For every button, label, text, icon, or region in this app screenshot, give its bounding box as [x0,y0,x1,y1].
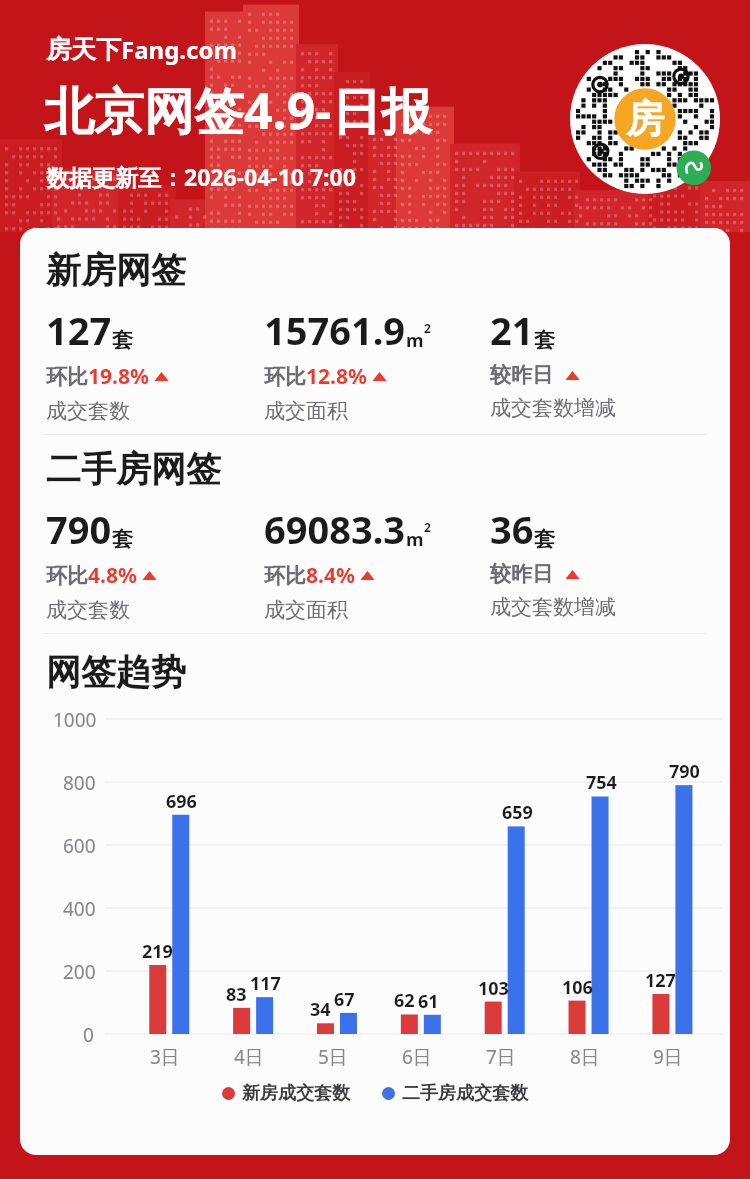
staticText: 9日 [653,1044,683,1070]
staticText: 127 [645,968,676,993]
staticText: m [406,328,424,353]
staticText: 新房成交套数 [242,1082,350,1105]
staticText: 400 [63,896,96,922]
button[interactable]: 房天下 [46,33,237,66]
staticText: 106 [562,975,593,1000]
staticText: 6日 [402,1044,432,1070]
staticText: 61 [418,989,439,1014]
staticText: 二手房成交套数 [402,1082,528,1105]
staticText: 较昨日 [490,561,553,587]
button[interactable]: 新房成交套数 [218,1078,354,1109]
button[interactable]: 69083.3 [264,503,490,623]
staticText: 1000 [53,707,97,733]
staticText: 117 [250,971,281,996]
staticText: 67 [334,987,355,1012]
staticText: 环比 [46,364,88,390]
staticText: 4.8% [88,561,137,590]
staticText: 套 [534,327,555,353]
button[interactable]: 127 [46,304,264,424]
staticText: 套 [112,526,133,552]
staticText: 成交套数 [46,398,130,424]
staticText: 34 [310,997,331,1022]
staticText: m [406,527,424,552]
staticText: 2 [424,519,431,535]
staticText: 754 [586,770,617,795]
staticText: 数据更新至：2026-04-10 7:00 [46,161,356,192]
staticText: 套 [112,327,133,353]
staticText: 790 [669,759,700,784]
staticText: 5日 [318,1044,348,1070]
button[interactable]: 扫码查看小程序 [570,44,720,194]
staticText: 新房网签 [46,248,186,292]
staticText: 4日 [234,1044,264,1070]
staticText: 成交面积 [264,597,348,623]
staticText: 83 [226,982,247,1007]
staticText: 127 [46,304,112,356]
staticText: 二手房网签 [46,447,221,491]
staticText: 北京网签4.9-日报 [44,76,432,144]
staticText: 较昨日 [490,362,553,388]
staticText: 套 [534,526,555,552]
staticText: 环比 [264,563,306,589]
button[interactable]: 36 [490,503,710,620]
button[interactable]: 二手房成交套数 [378,1078,532,1109]
staticText: 200 [63,959,96,985]
staticText: 房 [626,95,664,143]
staticText: 62 [394,988,415,1013]
staticText: 21 [490,304,534,356]
staticText: 600 [63,833,96,859]
staticText: 103 [478,976,509,1001]
button[interactable]: 15761.9 [264,304,490,424]
staticText: 环比 [46,563,88,589]
staticText: 696 [166,789,197,814]
staticText: 成交套数增减 [490,395,616,421]
staticText: 8日 [570,1044,600,1070]
staticText: 环比 [264,364,306,390]
staticText: 800 [63,770,96,796]
staticText: 15761.9 [264,304,406,356]
staticText: 2 [424,320,431,336]
staticText: Fang.com [121,33,237,66]
staticText: 36 [490,503,534,555]
button[interactable]: 21 [490,304,710,421]
staticText: 成交面积 [264,398,348,424]
button[interactable]: 790 [46,503,264,623]
staticText: 房天下 [46,34,121,65]
staticText: 3日 [150,1044,180,1070]
staticText: 69083.3 [264,503,406,555]
staticText: 成交套数 [46,597,130,623]
staticText: 790 [46,503,112,555]
staticText: 0 [83,1022,94,1048]
staticText: 8.4% [306,561,355,590]
staticText: 成交套数增减 [490,594,616,620]
staticText: 7日 [486,1044,516,1070]
staticText: 12.8% [306,362,367,391]
staticText: 网签趋势 [46,650,186,694]
staticText: 659 [502,800,533,825]
staticText: 219 [142,939,173,964]
staticText: 19.8% [88,362,149,391]
